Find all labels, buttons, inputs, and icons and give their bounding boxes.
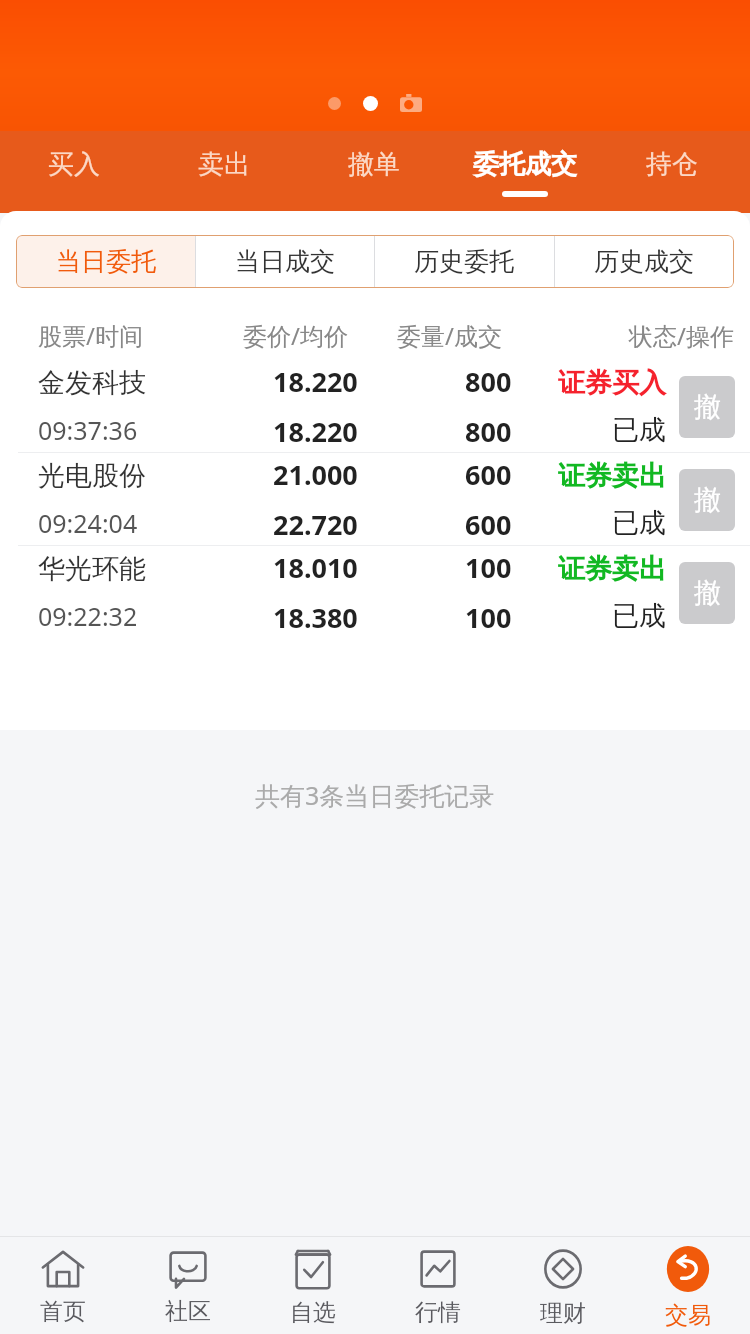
staticText: 证券卖出: [558, 459, 666, 493]
staticText: 委价/均价: [243, 319, 348, 352]
button[interactable]: 撤: [679, 562, 735, 624]
staticText: 22.720: [273, 506, 358, 543]
button[interactable]: 撤: [679, 376, 735, 438]
staticText: 委托成交: [473, 148, 577, 181]
staticText: 历史成交: [594, 246, 694, 277]
staticText: 委量/成交: [397, 319, 502, 352]
staticText: 撤: [694, 576, 721, 610]
button[interactable]: 当日成交: [195, 235, 374, 288]
staticText: 600: [465, 506, 512, 543]
staticText: 理财: [540, 1299, 586, 1328]
button[interactable]: 光电股份: [0, 453, 750, 546]
staticText: 已成: [612, 413, 666, 447]
staticText: 共有3条当日委托记录: [255, 778, 495, 812]
staticText: 证券卖出: [558, 552, 666, 586]
button[interactable]: Camera: [400, 94, 422, 112]
staticText: 持仓: [646, 148, 698, 181]
button[interactable]: 历史委托: [374, 235, 554, 288]
button[interactable]: 行情: [375, 1237, 500, 1334]
button[interactable]: 卖出: [169, 131, 279, 213]
staticText: 800: [465, 413, 512, 450]
staticText: 18.380: [273, 599, 358, 636]
staticText: 卖出: [198, 148, 250, 181]
staticText: 自选: [290, 1298, 336, 1327]
button[interactable]: 金发科技: [0, 360, 750, 453]
staticText: 100: [465, 549, 512, 586]
staticText: 已成: [612, 599, 666, 633]
staticText: 华光环能: [38, 552, 146, 586]
staticText: 买入: [48, 148, 100, 181]
button[interactable]: 买入: [19, 131, 129, 213]
staticText: 撤: [694, 390, 721, 424]
button[interactable]: 自选: [250, 1237, 375, 1334]
button[interactable]: 社区: [125, 1237, 250, 1334]
staticText: 当日成交: [235, 246, 335, 277]
button[interactable]: 理财: [500, 1237, 625, 1334]
staticText: 09:37:36: [38, 413, 138, 447]
staticText: 证券买入: [558, 366, 666, 400]
staticText: 光电股份: [38, 459, 146, 493]
staticText: 首页: [40, 1297, 86, 1326]
staticText: 21.000: [273, 456, 358, 493]
staticText: 交易: [665, 1301, 711, 1330]
button[interactable]: 委托成交: [450, 131, 600, 213]
staticText: 600: [465, 456, 512, 493]
button[interactable]: 持仓: [617, 131, 727, 213]
staticText: 已成: [612, 506, 666, 540]
staticText: 18.220: [273, 413, 358, 450]
staticText: 18.010: [273, 549, 358, 586]
button[interactable]: 华光环能: [0, 546, 750, 639]
button[interactable]: 历史成交: [554, 235, 734, 288]
staticText: 09:24:04: [38, 506, 138, 540]
staticText: 社区: [165, 1297, 211, 1326]
button[interactable]: 当日委托: [16, 235, 195, 288]
staticText: 撤单: [348, 148, 400, 181]
staticText: 行情: [415, 1298, 461, 1327]
staticText: 历史委托: [414, 246, 514, 277]
button[interactable]: 交易: [625, 1237, 750, 1334]
staticText: 100: [465, 599, 512, 636]
staticText: 状态/操作: [629, 319, 734, 352]
button[interactable]: 撤: [679, 469, 735, 531]
button[interactable]: 首页: [0, 1237, 125, 1334]
button[interactable]: 撤单: [319, 131, 429, 213]
staticText: 撤: [694, 483, 721, 517]
staticText: 800: [465, 363, 512, 400]
staticText: 09:22:32: [38, 599, 138, 633]
staticText: 股票/时间: [38, 319, 143, 352]
staticText: 18.220: [273, 363, 358, 400]
staticText: 金发科技: [38, 366, 146, 400]
staticText: 当日委托: [56, 246, 156, 277]
